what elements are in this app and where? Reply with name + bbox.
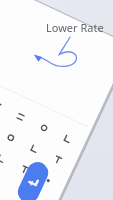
button[interactable]: Lower Rate	[46, 20, 104, 35]
other: Pointer arrow	[0, 0, 113, 200]
